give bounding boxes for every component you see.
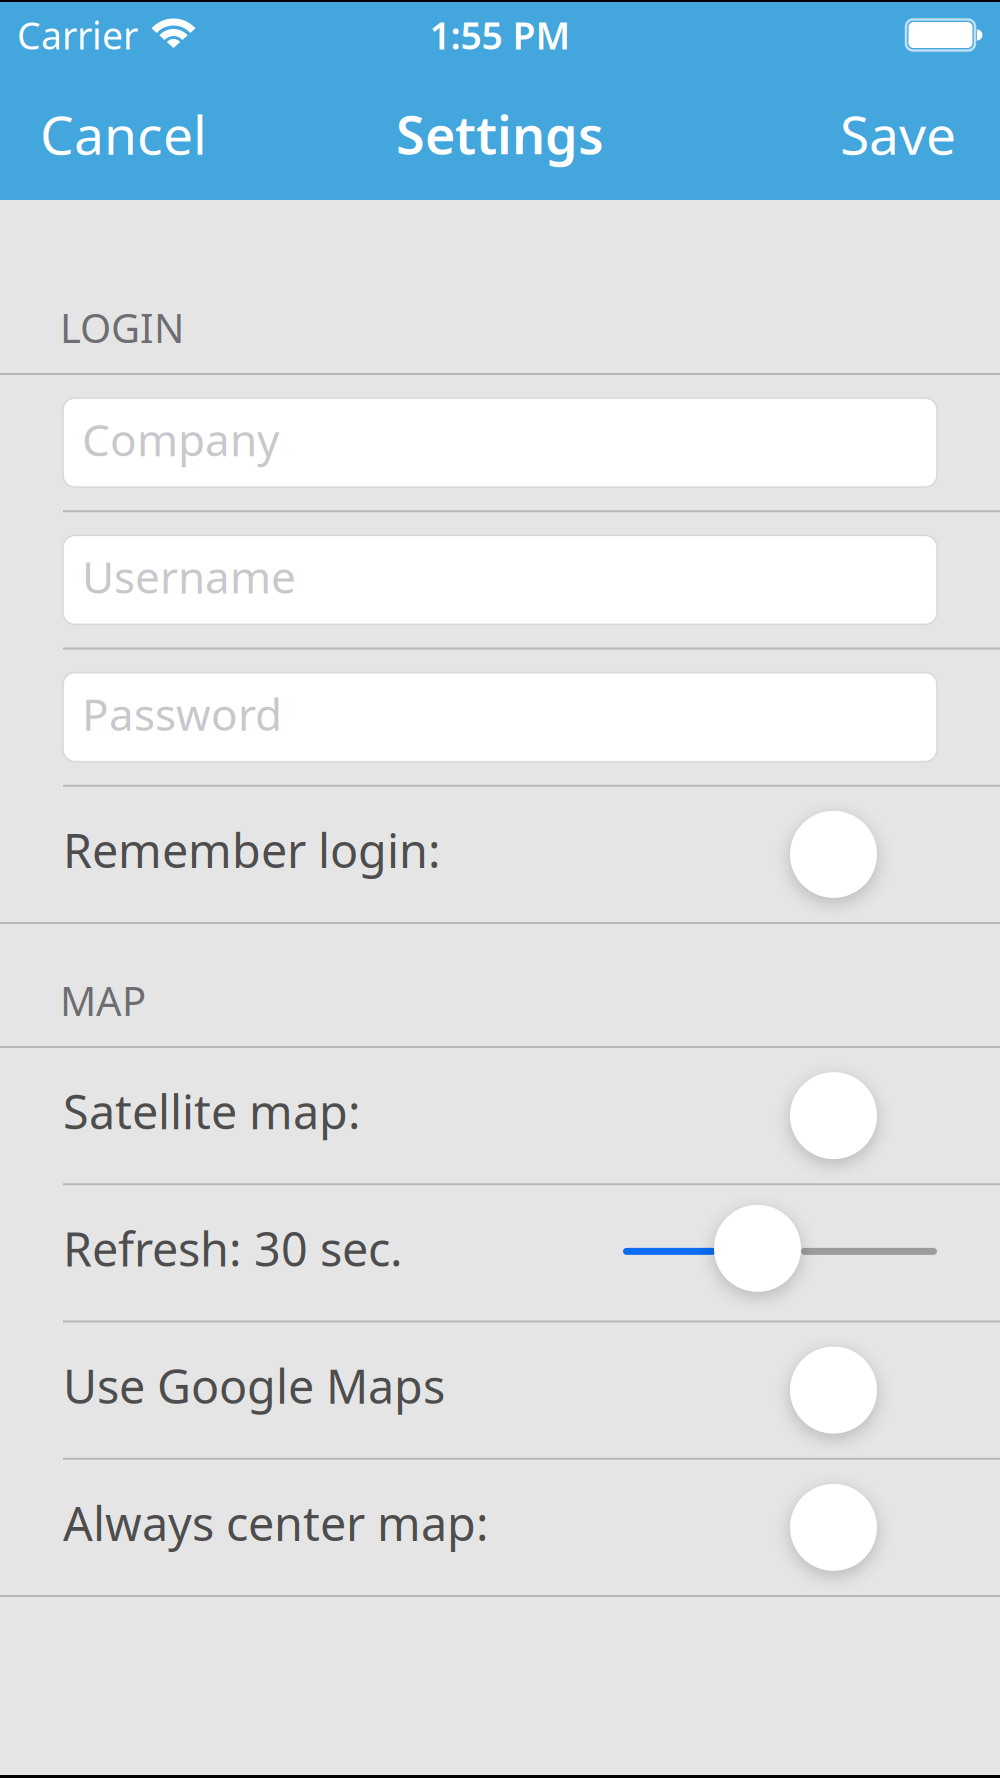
staticText: Cancel [40,99,207,169]
staticText: Carrier [17,10,138,60]
button[interactable]: Always center map: [0,1460,1000,1597]
staticText: Refresh: 30 sec. [63,1217,403,1279]
staticText: MAP [60,974,146,1027]
button[interactable]: Company [0,375,1000,512]
button[interactable]: Cancel [0,68,247,200]
staticText: Always center map: [63,1492,489,1554]
staticText: Username [82,547,296,606]
staticText: Satellite map: [63,1080,361,1142]
staticText: Remember login: [63,819,441,881]
staticText: Company [82,410,279,468]
button[interactable]: Password [0,649,1000,787]
staticText: Settings [396,99,604,169]
staticText: Save [840,99,956,169]
staticText: LOGIN [60,301,184,354]
button[interactable]: Satellite map: [0,1048,1000,1185]
staticText: Use Google Maps [63,1355,445,1417]
button[interactable]: Save [796,68,1000,200]
button[interactable]: Username [0,512,1000,649]
button[interactable]: Use Google Maps [0,1322,1000,1460]
staticText: 1:55 PM [429,10,570,60]
button[interactable]: Remember login: [0,787,1000,924]
staticText: Password [82,684,282,743]
